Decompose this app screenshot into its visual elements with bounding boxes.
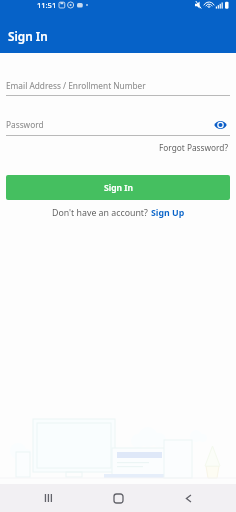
staticText: Email Address / Enrollment Number	[6, 80, 146, 91]
staticText: 11:51	[37, 0, 57, 10]
button[interactable]: Show password	[210, 118, 230, 131]
button[interactable]: Sign Up	[151, 207, 185, 219]
staticText: Sign In	[104, 182, 133, 194]
button[interactable]: Sign In	[6, 175, 230, 200]
button[interactable]: Back	[168, 484, 208, 512]
staticText: Don't have an account?	[52, 207, 151, 219]
staticText: Password	[6, 119, 44, 130]
staticText: Sign In	[8, 28, 48, 44]
button[interactable]: Recents	[28, 484, 68, 512]
button[interactable]: Forgot Password?	[159, 142, 236, 153]
button[interactable]: Home	[98, 484, 138, 512]
